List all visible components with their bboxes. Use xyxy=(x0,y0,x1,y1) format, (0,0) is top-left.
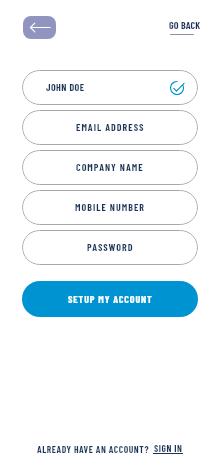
button[interactable]: COMPANY NAME xyxy=(22,150,198,185)
staticText: SETUP MY ACCOUNT xyxy=(68,293,153,305)
button[interactable]: MOBILE NUMBER xyxy=(22,190,198,225)
staticText: EMAIL ADDRESS xyxy=(76,121,145,133)
staticText: PASSWORD xyxy=(87,241,134,253)
staticText: MOBILE NUMBER xyxy=(75,201,146,213)
button[interactable]: GO BACK xyxy=(169,19,201,35)
button[interactable]: JOHN DOE xyxy=(22,70,198,105)
button[interactable]: PASSWORD xyxy=(22,230,198,265)
staticText: SIGN IN xyxy=(154,442,183,453)
staticText: JOHN DOE xyxy=(46,81,85,93)
button[interactable]: EMAIL ADDRESS xyxy=(22,110,198,145)
button[interactable]: SIGN IN xyxy=(153,442,183,454)
staticText: COMPANY NAME xyxy=(76,161,144,173)
staticText: ALREADY HAVE AN ACCOUNT? xyxy=(37,443,150,454)
button[interactable]: SETUP MY ACCOUNT xyxy=(22,281,198,317)
staticText: GO BACK xyxy=(169,19,201,31)
button[interactable]: Back xyxy=(23,16,56,39)
